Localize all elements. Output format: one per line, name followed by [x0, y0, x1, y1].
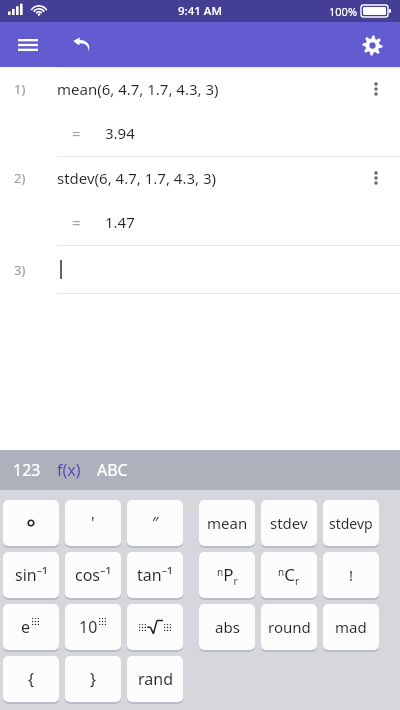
staticText: 1) [14, 80, 26, 98]
button[interactable]: e [3, 604, 59, 650]
staticText: ' [91, 512, 95, 534]
staticText: mad [335, 617, 367, 637]
staticText: stdev [270, 513, 308, 533]
button[interactable]: More options [360, 73, 392, 105]
staticText: stdev(6, 4.7, 1.7, 4.3, 3) [57, 168, 216, 188]
button[interactable] [127, 604, 183, 650]
staticText: f(x) [57, 459, 81, 481]
staticText: nPr [217, 563, 238, 588]
staticText: ABC [97, 459, 128, 481]
button[interactable]: round [261, 604, 317, 650]
button[interactable]: } [65, 656, 121, 702]
button[interactable]: Settings [354, 27, 390, 63]
staticText: stdevp [329, 514, 373, 533]
staticText: e [21, 616, 31, 638]
staticText: 9:41 AM [178, 3, 222, 19]
button[interactable]: abs [199, 604, 255, 650]
staticText: nCr [278, 563, 300, 588]
staticText: 1.47 [105, 212, 135, 232]
button[interactable]: 10 [65, 604, 121, 650]
staticText: = [72, 123, 81, 143]
staticText: round [268, 617, 311, 637]
staticText: 2) [14, 169, 26, 187]
staticText: { [28, 668, 35, 690]
button[interactable]: { [3, 656, 59, 702]
button[interactable]: cos⁻¹ [65, 552, 121, 598]
staticText: 10 [79, 616, 98, 638]
button[interactable]: mad [323, 604, 379, 650]
button[interactable]: f(x) [55, 455, 83, 485]
staticText: ″ [152, 512, 159, 534]
button[interactable]: 123 [11, 455, 43, 485]
button[interactable]: ″ [127, 500, 183, 546]
staticText: sin⁻¹ [15, 564, 48, 586]
staticText: = [72, 212, 81, 232]
button[interactable]: nPr [199, 552, 255, 598]
staticText: 123 [13, 459, 41, 481]
button[interactable]: sin⁻¹ [3, 552, 59, 598]
staticText: } [90, 668, 97, 690]
staticText: tan⁻¹ [137, 564, 173, 586]
button[interactable]: ABC [95, 455, 130, 485]
button[interactable]: Menu [10, 27, 46, 63]
button[interactable]: 3) [0, 245, 400, 294]
button[interactable]: nCr [261, 552, 317, 598]
button[interactable]: tan⁻¹ [127, 552, 183, 598]
staticText: abs [215, 617, 240, 637]
staticText: mean [207, 513, 248, 533]
button[interactable]: stdevp [323, 500, 379, 546]
button[interactable]: rand [127, 656, 183, 702]
staticText: ! [349, 565, 354, 585]
button[interactable]: 1) [0, 67, 400, 156]
staticText: 3) [14, 261, 26, 279]
staticText: 100% [329, 4, 358, 19]
button[interactable]: Undo [64, 27, 100, 63]
button[interactable] [3, 500, 59, 546]
button[interactable]: 2) [0, 156, 400, 245]
button[interactable]: ' [65, 500, 121, 546]
button[interactable]: stdev [261, 500, 317, 546]
staticText: mean(6, 4.7, 1.7, 4.3, 3) [57, 79, 219, 99]
staticText: 3.94 [105, 123, 135, 143]
staticText: cos⁻¹ [75, 564, 112, 586]
button[interactable]: More options [360, 162, 392, 194]
staticText: rand [138, 668, 173, 690]
button[interactable]: mean [199, 500, 255, 546]
button[interactable]: ! [323, 552, 379, 598]
